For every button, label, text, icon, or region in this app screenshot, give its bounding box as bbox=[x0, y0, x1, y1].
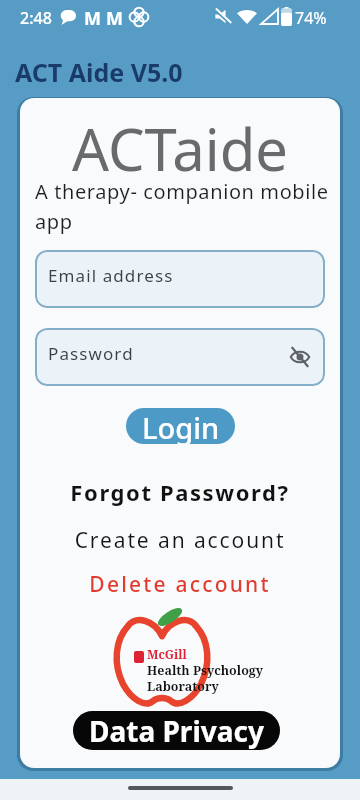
staticText: ACTaide bbox=[20, 109, 340, 188]
staticText: Login bbox=[142, 408, 220, 444]
staticText: A therapy- companion mobile app bbox=[35, 178, 329, 235]
staticText: Password bbox=[48, 342, 134, 365]
button[interactable]: Create an account bbox=[20, 526, 340, 555]
staticText: Health Psychology bbox=[147, 662, 264, 679]
button[interactable]: Email address bbox=[35, 250, 325, 308]
button[interactable]: Forgot Password? bbox=[20, 477, 340, 507]
staticText: ACT Aide V5.0 bbox=[15, 55, 183, 89]
staticText: Laboratory bbox=[147, 678, 219, 695]
staticText: Data Privacy bbox=[89, 712, 264, 750]
staticText: M bbox=[106, 6, 123, 31]
button[interactable]: Delete account bbox=[20, 570, 340, 599]
button[interactable]: Login bbox=[126, 408, 235, 444]
staticText: 2:48 bbox=[20, 7, 52, 29]
staticText: McGill bbox=[147, 646, 187, 662]
staticText: M bbox=[84, 6, 101, 31]
staticText: Email address bbox=[48, 264, 174, 287]
button[interactable]: Data Privacy bbox=[73, 711, 280, 750]
staticText: 74% bbox=[295, 7, 327, 29]
button[interactable]: Password bbox=[35, 328, 325, 386]
